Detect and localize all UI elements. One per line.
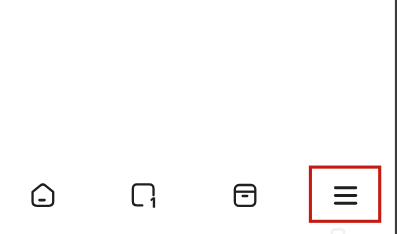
button[interactable]: Menu xyxy=(308,165,382,223)
button[interactable]: Home xyxy=(18,171,66,219)
button[interactable]: Tabs xyxy=(120,171,168,219)
button[interactable]: Bookmarks xyxy=(221,171,269,219)
